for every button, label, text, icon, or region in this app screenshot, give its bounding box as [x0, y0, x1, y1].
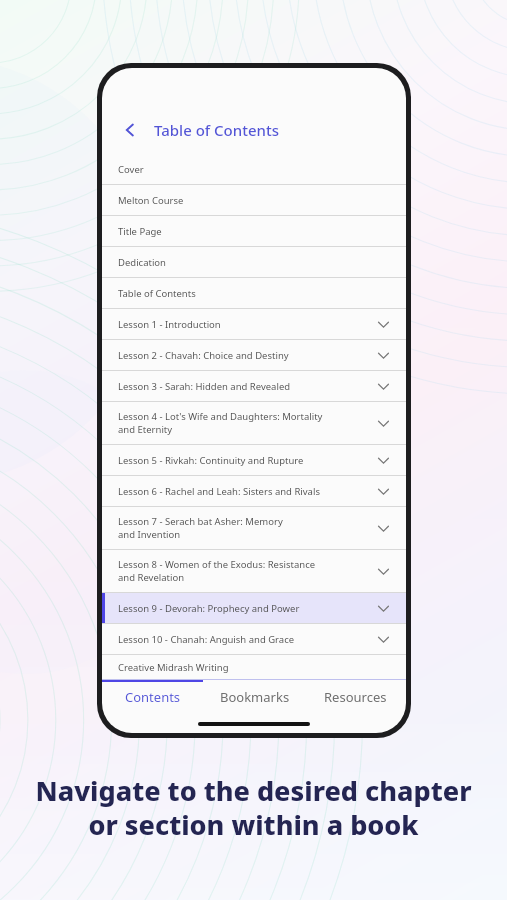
- staticText: Creative Midrash Writing: [118, 661, 394, 674]
- button[interactable]: Lesson 8 - Women of the Exodus: Resistan…: [102, 550, 406, 592]
- staticText: Lesson 1 - Introduction: [118, 318, 372, 331]
- staticText: Dedication: [118, 256, 394, 269]
- button[interactable]: Lesson 1 - Introduction: [102, 309, 406, 339]
- staticText: Table of Contents: [118, 287, 394, 300]
- button[interactable]: Bookmarks: [204, 682, 305, 712]
- button[interactable]: Title Page: [102, 216, 406, 246]
- button[interactable]: Lesson 9 - Devorah: Prophecy and Power: [102, 593, 406, 623]
- button[interactable]: Creative Midrash Writing: [102, 655, 406, 679]
- staticText: Title Page: [118, 225, 394, 238]
- staticText: Navigate to the desired chapter or secti…: [35, 772, 472, 843]
- button[interactable]: Expand: [372, 412, 394, 434]
- button[interactable]: Melton Course: [102, 185, 406, 215]
- button[interactable]: Lesson 7 - Serach bat Asher: Memory and …: [102, 507, 406, 549]
- staticText: Lesson 2 - Chavah: Choice and Destiny: [118, 349, 372, 362]
- button[interactable]: Lesson 2 - Chavah: Choice and Destiny: [102, 340, 406, 370]
- staticText: Table of Contents: [154, 120, 279, 140]
- button[interactable]: Expand: [372, 597, 394, 619]
- button[interactable]: Lesson 6 - Rachel and Leah: Sisters and …: [102, 476, 406, 506]
- staticText: Lesson 10 - Chanah: Anguish and Grace: [118, 633, 372, 646]
- staticText: Lesson 3 - Sarah: Hidden and Revealed: [118, 380, 372, 393]
- button[interactable]: Expand: [372, 375, 394, 397]
- staticText: Lesson 5 - Rivkah: Continuity and Ruptur…: [118, 454, 372, 467]
- staticText: Lesson 6 - Rachel and Leah: Sisters and …: [118, 485, 372, 498]
- button[interactable]: Expand: [372, 517, 394, 539]
- button[interactable]: Back: [114, 114, 146, 146]
- button[interactable]: Contents: [102, 682, 204, 712]
- button[interactable]: Dedication: [102, 247, 406, 277]
- button[interactable]: Expand: [372, 449, 394, 471]
- staticText: Bookmarks: [220, 688, 290, 706]
- staticText: Cover: [118, 163, 394, 176]
- button[interactable]: Lesson 5 - Rivkah: Continuity and Ruptur…: [102, 445, 406, 475]
- button[interactable]: Expand: [372, 480, 394, 502]
- staticText: Lesson 4 - Lot's Wife and Daughters: Mor…: [118, 410, 372, 436]
- staticText: Resources: [324, 688, 387, 706]
- button[interactable]: Table of Contents: [102, 278, 406, 308]
- staticText: Melton Course: [118, 194, 394, 207]
- staticText: Contents: [125, 688, 181, 706]
- button[interactable]: Lesson 3 - Sarah: Hidden and Revealed: [102, 371, 406, 401]
- button[interactable]: Resources: [305, 682, 406, 712]
- button[interactable]: Cover: [102, 154, 406, 184]
- staticText: Lesson 8 - Women of the Exodus: Resistan…: [118, 558, 372, 584]
- button[interactable]: Lesson 10 - Chanah: Anguish and Grace: [102, 624, 406, 654]
- button[interactable]: Expand: [372, 560, 394, 582]
- staticText: Lesson 9 - Devorah: Prophecy and Power: [118, 602, 372, 615]
- button[interactable]: Expand: [372, 313, 394, 335]
- button[interactable]: Lesson 4 - Lot's Wife and Daughters: Mor…: [102, 402, 406, 444]
- button[interactable]: Expand: [372, 344, 394, 366]
- button[interactable]: Expand: [372, 628, 394, 650]
- staticText: Lesson 7 - Serach bat Asher: Memory and …: [118, 515, 372, 541]
